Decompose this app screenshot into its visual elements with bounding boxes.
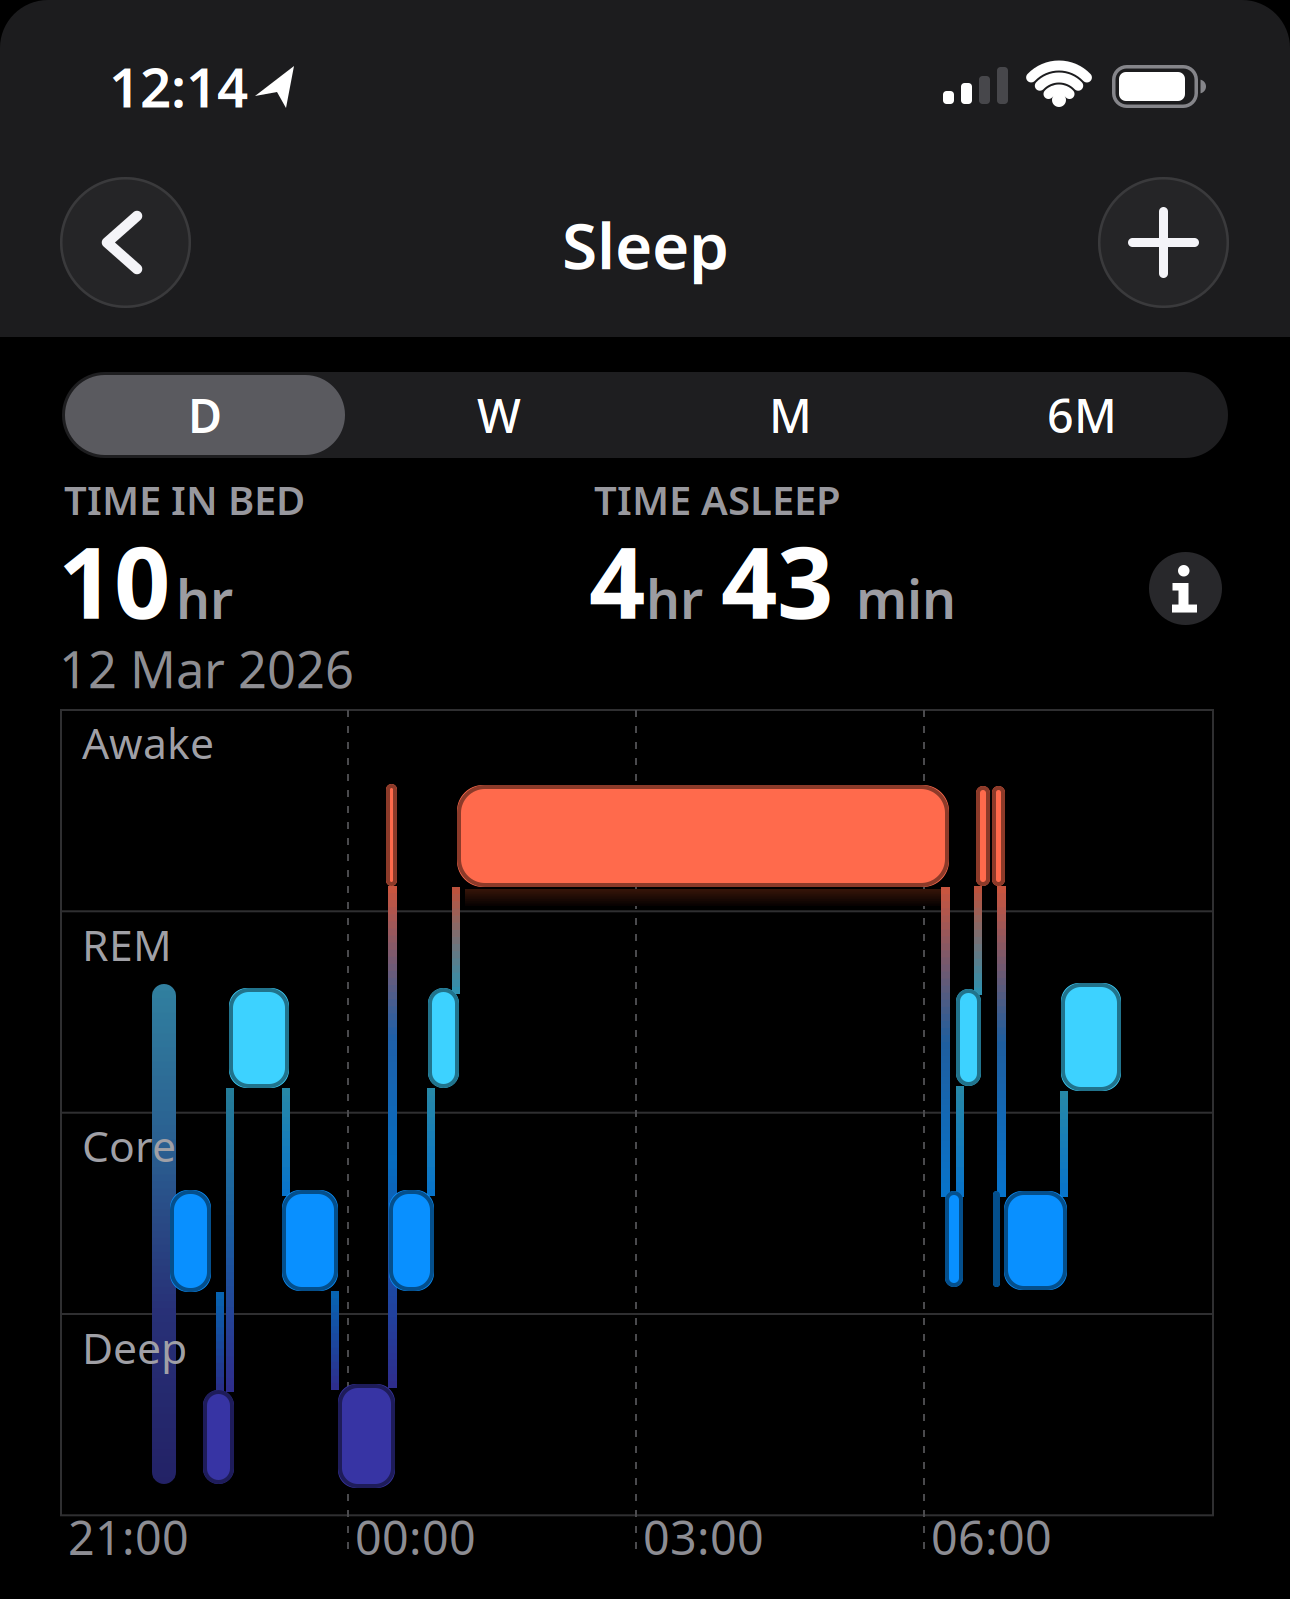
staticText: REM xyxy=(82,916,172,973)
staticText: Sleep xyxy=(562,202,729,287)
staticText: W xyxy=(477,384,521,446)
staticText: TIME IN BED xyxy=(64,473,305,526)
button[interactable]: Back xyxy=(60,177,191,308)
staticText: hr xyxy=(176,563,233,634)
button[interactable]: D xyxy=(65,375,345,455)
button[interactable]: Add Data xyxy=(1098,177,1229,308)
staticText: Awake xyxy=(82,714,214,771)
staticText: 12 Mar 2026 xyxy=(59,635,354,702)
staticText: 10 xyxy=(58,515,170,646)
staticText: Core xyxy=(82,1117,176,1174)
staticText: 12:14 xyxy=(109,50,248,123)
button[interactable]: M xyxy=(645,372,936,458)
button[interactable]: About Sleep xyxy=(1149,552,1222,625)
staticText: min xyxy=(856,563,956,634)
staticText: 43 xyxy=(721,515,833,646)
staticText: hr xyxy=(646,563,703,634)
staticText: D xyxy=(188,384,222,446)
staticText: 00:00 xyxy=(355,1506,476,1568)
staticText: Deep xyxy=(82,1319,187,1376)
staticText: 4 xyxy=(589,515,645,646)
button[interactable]: 6M xyxy=(936,372,1227,458)
staticText: 21:00 xyxy=(68,1506,189,1568)
staticText: 06:00 xyxy=(931,1506,1052,1568)
staticText: 6M xyxy=(1047,384,1117,446)
staticText: 03:00 xyxy=(643,1506,764,1568)
staticText: TIME ASLEEP xyxy=(594,473,841,526)
staticText: M xyxy=(769,384,812,446)
button[interactable]: W xyxy=(353,372,644,458)
